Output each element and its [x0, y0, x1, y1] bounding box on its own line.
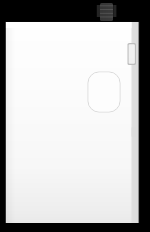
- button[interactable]: Product photo of white appliance: [0, 0, 150, 232]
